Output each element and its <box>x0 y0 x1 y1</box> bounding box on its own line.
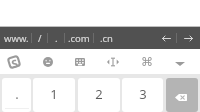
button[interactable]: . <box>48 27 64 49</box>
button[interactable]: Sogou input method <box>0 49 28 74</box>
button[interactable]: Move cursor <box>99 49 127 74</box>
staticText: .cn <box>100 32 113 45</box>
button[interactable]: 1 <box>33 78 75 112</box>
button[interactable]: .cn <box>94 27 118 49</box>
staticText: www. <box>4 32 29 45</box>
staticText: ⌘ <box>141 55 153 69</box>
button[interactable]: Switch keyboard <box>66 49 94 74</box>
button[interactable]: Shortcuts <box>133 49 161 74</box>
button[interactable]: . <box>2 78 31 112</box>
staticText: 3 <box>139 85 147 103</box>
button[interactable]: 2 <box>78 78 120 112</box>
staticText: . <box>55 32 58 45</box>
staticText: 2 <box>95 85 103 103</box>
button[interactable]: Previous suggestion <box>157 27 176 49</box>
button[interactable]: .com <box>65 27 93 49</box>
staticText: 1 <box>50 85 58 103</box>
button[interactable]: 3 <box>122 78 163 112</box>
button[interactable]: / <box>32 27 47 49</box>
staticText: / <box>38 32 42 45</box>
button[interactable]: Hide keyboard <box>166 49 194 74</box>
button[interactable]: www. <box>2 27 31 49</box>
button[interactable]: Emoji <box>34 49 62 74</box>
staticText: .com <box>68 32 90 45</box>
staticText: . <box>15 85 19 103</box>
button[interactable]: Backspace <box>166 78 198 112</box>
staticText: S <box>9 55 20 69</box>
button[interactable]: Next suggestion <box>179 27 198 49</box>
